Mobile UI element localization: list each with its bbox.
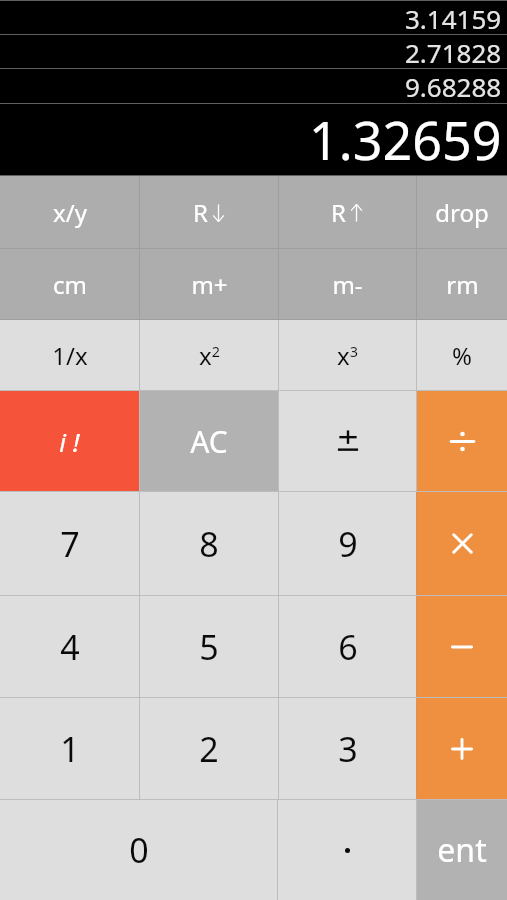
button[interactable]: Multiply [417, 492, 507, 595]
staticText: 2.71828 [405, 35, 502, 68]
button[interactable]: ent [417, 800, 507, 900]
staticText: m+ [191, 268, 228, 301]
staticText: i ! [59, 424, 80, 459]
button[interactable]: 2.71828 [0, 35, 507, 68]
staticText: 0 [129, 827, 149, 873]
button[interactable]: 6 [279, 596, 416, 697]
button[interactable]: 9.68288 [0, 69, 507, 103]
staticText: 2 [199, 726, 219, 772]
staticText: 6 [338, 624, 358, 670]
button[interactable]: 4 [0, 596, 139, 697]
staticText: 4 [60, 624, 80, 670]
button[interactable]: 5 [140, 596, 278, 697]
button[interactable]: 1 [0, 698, 139, 799]
button[interactable]: x/y [0, 176, 139, 248]
button[interactable]: x3 [279, 320, 416, 390]
staticText: rm [446, 268, 479, 301]
button[interactable]: AC [140, 391, 278, 491]
staticText: x/y [53, 196, 87, 229]
staticText: ent [437, 828, 487, 872]
button[interactable]: 9 [279, 492, 416, 595]
button[interactable]: Minus [417, 596, 507, 697]
staticText: AC [190, 421, 228, 462]
staticText: % [452, 339, 472, 372]
button[interactable]: 7 [0, 492, 139, 595]
staticText: m- [332, 268, 363, 301]
staticText: drop [435, 196, 489, 229]
staticText: 1.32659 [309, 104, 502, 175]
button[interactable]: 2 [140, 698, 278, 799]
button[interactable]: cm [0, 249, 139, 319]
button[interactable]: 3 [279, 698, 416, 799]
staticText: x3 [337, 339, 358, 372]
button[interactable]: Roll down [140, 176, 278, 248]
staticText: 1 [60, 726, 80, 772]
button[interactable]: m- [279, 249, 416, 319]
button[interactable]: 3.14159 [0, 1, 507, 34]
button[interactable]: Plus [417, 698, 507, 799]
button[interactable]: 8 [140, 492, 278, 595]
staticText: cm [53, 268, 87, 301]
button[interactable]: rm [417, 249, 507, 319]
staticText: 3.14159 [405, 1, 502, 34]
button[interactable]: Roll up [279, 176, 416, 248]
button[interactable]: % [417, 320, 507, 390]
staticText: 5 [199, 624, 219, 670]
button[interactable]: Decimal point [278, 800, 416, 900]
button[interactable]: x2 [140, 320, 278, 390]
staticText: 9 [338, 521, 358, 567]
button[interactable]: m+ [140, 249, 278, 319]
staticText: R [193, 196, 208, 229]
staticText: 9.68288 [405, 69, 502, 103]
staticText: 3 [338, 726, 358, 772]
staticText: 8 [199, 521, 219, 567]
button[interactable]: 0 [0, 800, 277, 900]
button[interactable]: Imaginary factorial [0, 391, 139, 491]
staticText: 1/x [52, 339, 88, 372]
button[interactable]: Divide [417, 391, 507, 491]
button[interactable]: 1/x [0, 320, 139, 390]
staticText: R [331, 196, 346, 229]
button[interactable]: Plus minus [279, 391, 416, 491]
button[interactable]: drop [417, 176, 507, 248]
staticText: x2 [199, 339, 220, 372]
button[interactable]: 1.32659 [0, 104, 507, 175]
staticText: 7 [60, 521, 80, 567]
